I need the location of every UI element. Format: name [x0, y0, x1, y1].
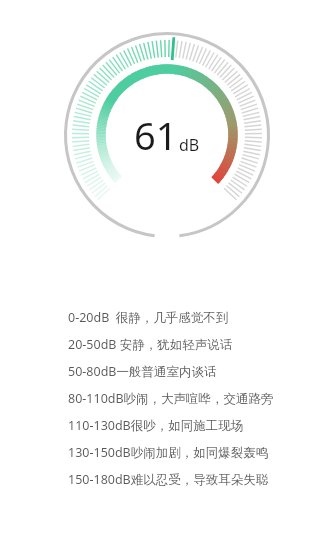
button[interactable]: 130-150dB吵闹加剧，如同爆裂轰鸣: [68, 439, 324, 466]
staticText: 20-50dB 安静，犹如轻声说话: [68, 336, 233, 353]
button[interactable]: 20-50dB 安静，犹如轻声说话: [68, 331, 324, 358]
button[interactable]: 110-130dB很吵，如同施工现场: [68, 412, 324, 439]
button[interactable]: Noise level gauge, 61 decibels: [62, 30, 272, 240]
staticText: 0-20dB 很静，几乎感觉不到: [68, 309, 229, 326]
staticText: 50-80dB一般普通室内谈话: [68, 363, 217, 380]
staticText: dB: [179, 134, 200, 156]
staticText: 150-180dB难以忍受，导致耳朵失聪: [68, 471, 269, 488]
button[interactable]: 80-110dB吵闹，大声喧哗，交通路旁: [68, 385, 324, 412]
staticText: 110-130dB很吵，如同施工现场: [68, 417, 244, 434]
button[interactable]: 50-80dB一般普通室内谈话: [68, 358, 324, 385]
button[interactable]: 0-20dB 很静，几乎感觉不到: [68, 304, 324, 331]
staticText: 61: [134, 109, 178, 161]
button[interactable]: 150-180dB难以忍受，导致耳朵失聪: [68, 466, 324, 493]
staticText: 80-110dB吵闹，大声喧哗，交通路旁: [68, 390, 274, 407]
staticText: 130-150dB吵闹加剧，如同爆裂轰鸣: [68, 444, 269, 461]
